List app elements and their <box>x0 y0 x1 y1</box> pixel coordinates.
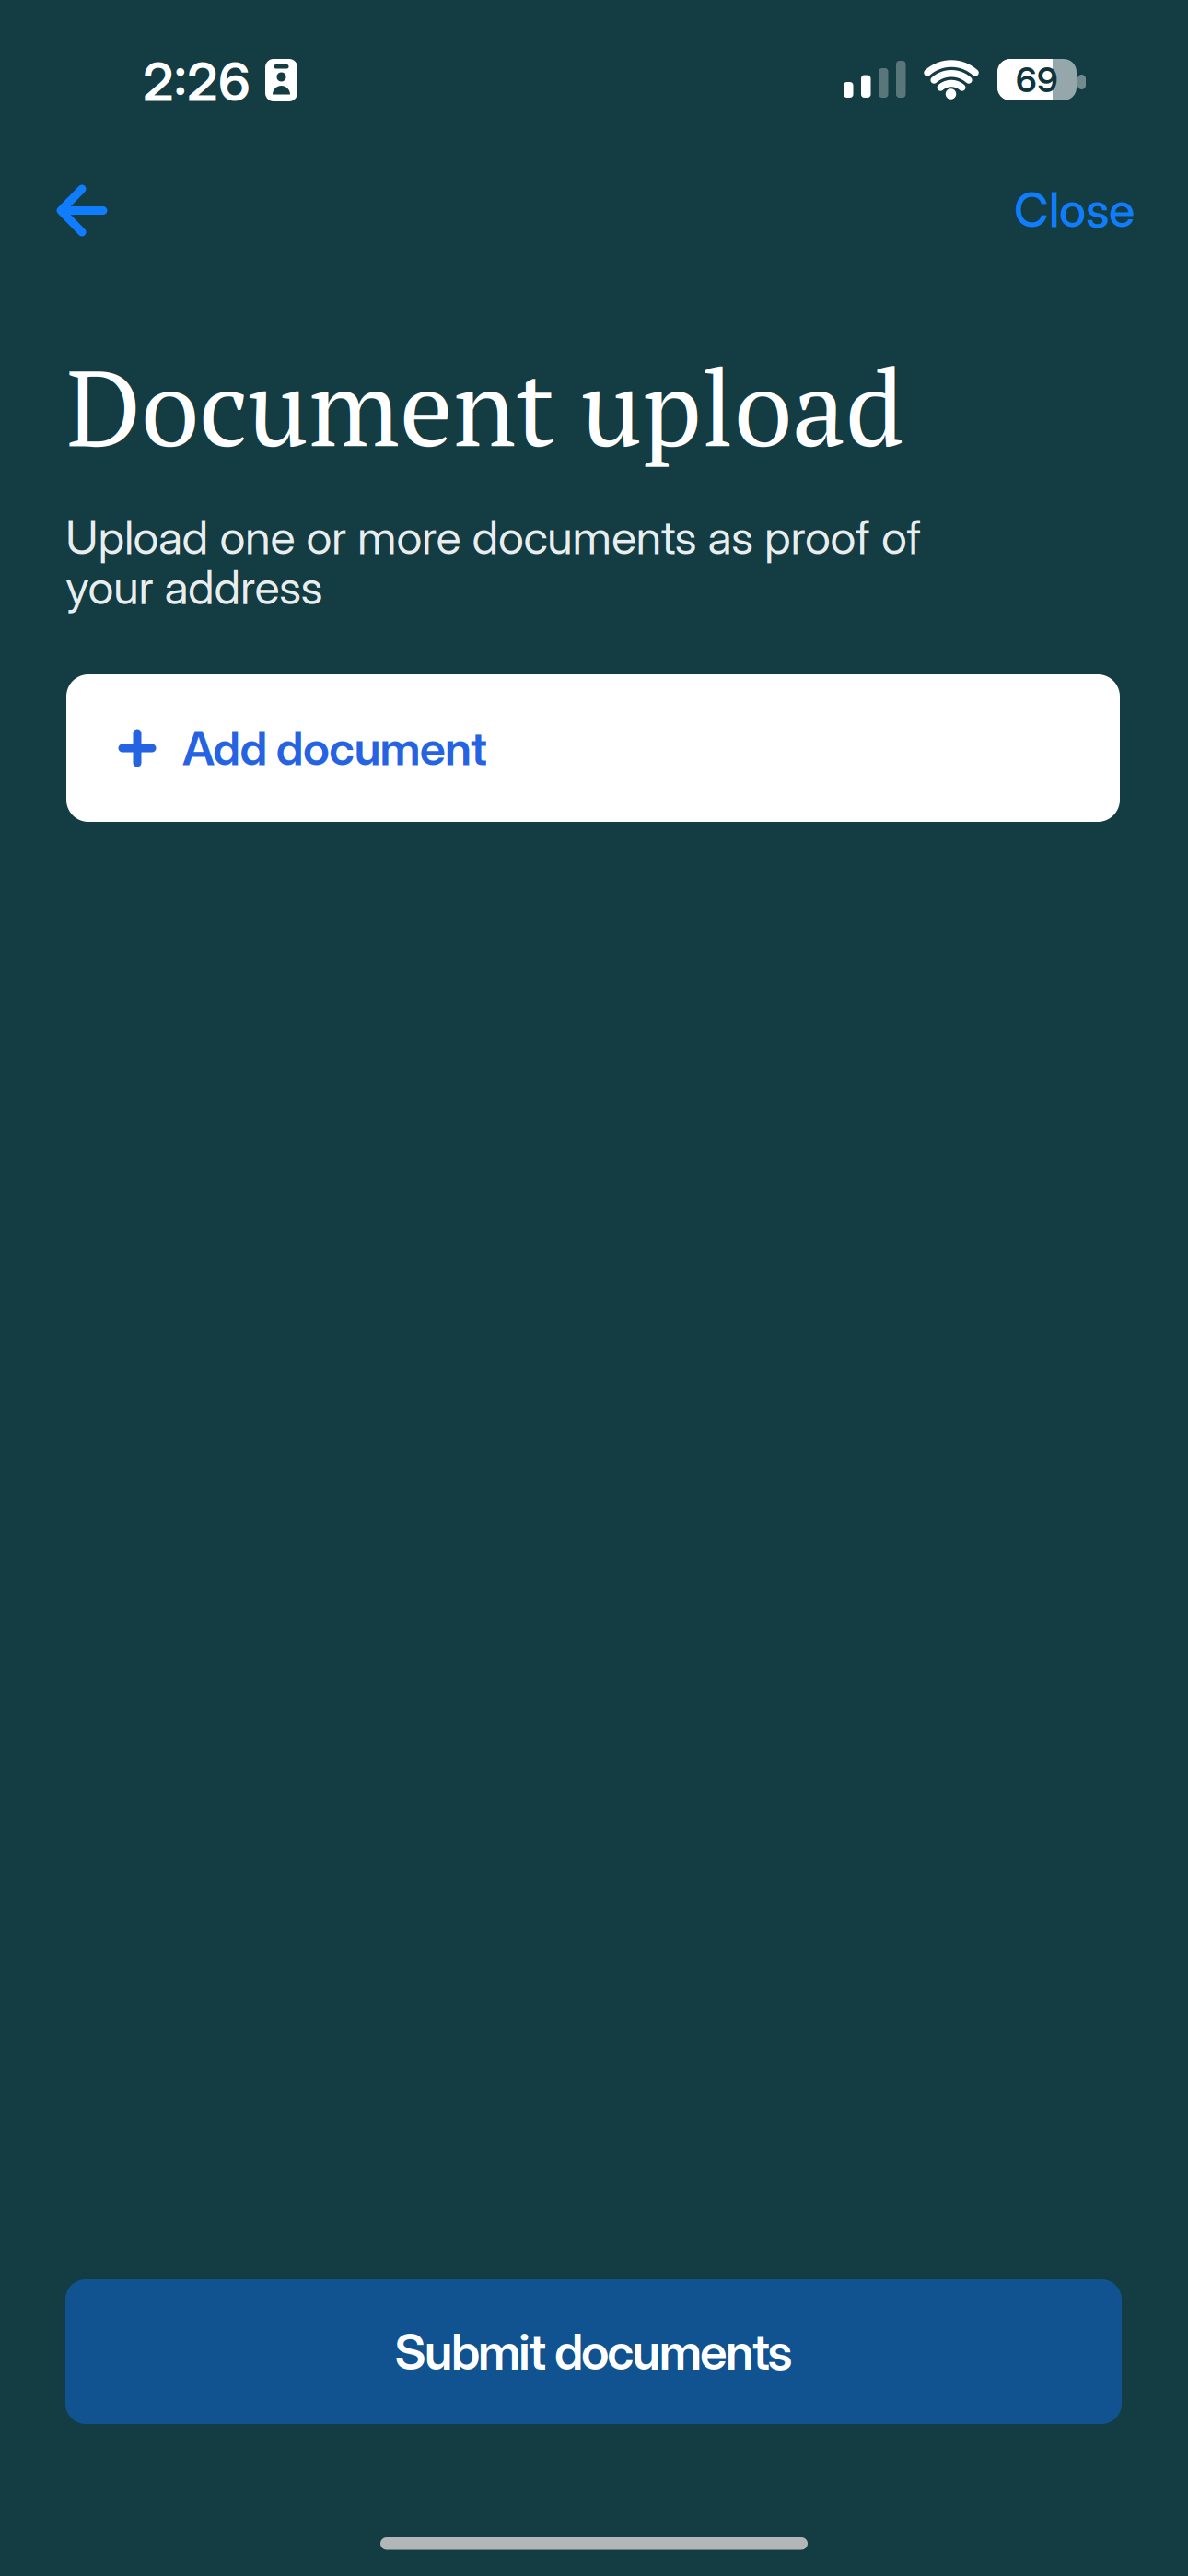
button[interactable]: Submit documents <box>65 2279 1122 2424</box>
staticText: Document upload <box>66 336 904 476</box>
button[interactable]: Close <box>1014 181 1135 239</box>
button[interactable]: Add document <box>66 674 1120 822</box>
staticText: Close <box>1014 181 1135 239</box>
staticText: Submit documents <box>395 2322 792 2381</box>
staticText: 2:26 <box>143 50 250 114</box>
staticText: 69 <box>1016 59 1058 101</box>
staticText: Add document <box>182 720 487 776</box>
button[interactable]: Back <box>51 178 116 243</box>
staticText: Upload one or more documents as proof of… <box>65 512 921 612</box>
